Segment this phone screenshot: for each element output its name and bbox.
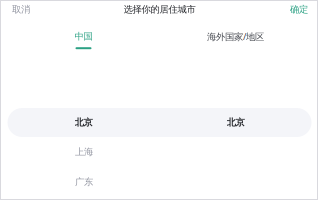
button[interactable]: 广东 — [8, 167, 160, 197]
staticText: 广东 — [75, 176, 93, 188]
button[interactable]: 确定 — [290, 4, 318, 15]
staticText: 选择你的居住城市 — [123, 4, 195, 15]
staticText: 北京 — [74, 117, 92, 128]
button[interactable]: 中国 — [7, 19, 159, 49]
staticText: 北京 — [226, 117, 244, 128]
button[interactable]: 取消 — [1, 4, 30, 15]
staticText: 中国 — [74, 31, 92, 42]
button[interactable]: 海外国家/地区 — [159, 18, 311, 50]
staticText: 确定 — [290, 4, 308, 15]
staticText: 海外国家/地区 — [207, 30, 264, 43]
button[interactable]: 上海 — [8, 137, 160, 167]
button[interactable]: 北京 — [7, 108, 159, 137]
button[interactable]: 北京 — [159, 108, 311, 137]
staticText: 上海 — [75, 146, 93, 158]
staticText: 取消 — [12, 4, 30, 15]
